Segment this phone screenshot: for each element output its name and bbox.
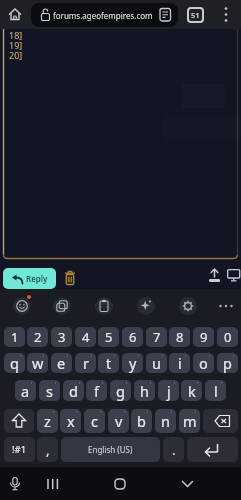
- staticText: j: [167, 381, 171, 401]
- button[interactable]: j: [158, 380, 179, 401]
- staticText: k: [188, 381, 196, 401]
- button[interactable]: 3: [51, 327, 72, 347]
- button[interactable]: 6: [122, 327, 143, 347]
- staticText: ': [185, 354, 187, 361]
- button[interactable]: q: [4, 353, 25, 373]
- staticText: r: [83, 353, 89, 373]
- button[interactable]: [13, 297, 31, 315]
- button[interactable]: 2: [27, 327, 48, 347]
- button[interactable]: 8: [169, 327, 190, 347]
- button[interactable]: [203, 409, 238, 433]
- button[interactable]: 7: [146, 327, 167, 347]
- button[interactable]: s: [39, 380, 60, 401]
- staticText: 5: [105, 328, 113, 346]
- button[interactable]: [187, 437, 238, 462]
- staticText: 1: [11, 328, 19, 346]
- button[interactable]: z: [37, 409, 58, 433]
- staticText: ': [102, 381, 104, 388]
- button[interactable]: h: [134, 380, 155, 401]
- staticText: e: [57, 353, 66, 373]
- button[interactable]: x: [60, 409, 81, 433]
- button[interactable]: p: [217, 353, 238, 373]
- button[interactable]: [7, 6, 23, 22]
- button[interactable]: w: [27, 353, 48, 373]
- staticText: ': [171, 410, 173, 417]
- staticText: 19]: [9, 39, 23, 51]
- button[interactable]: [95, 297, 113, 315]
- staticText: v: [115, 411, 123, 431]
- staticText: ': [124, 410, 126, 417]
- staticText: b: [137, 411, 146, 431]
- staticText: n: [161, 411, 170, 431]
- staticText: ': [162, 354, 164, 361]
- button[interactable]: 9: [193, 327, 214, 347]
- button[interactable]: u: [146, 353, 167, 373]
- button[interactable]: ,: [37, 437, 58, 462]
- button[interactable]: [219, 5, 233, 24]
- button[interactable]: g: [110, 380, 131, 401]
- button[interactable]: [227, 269, 241, 283]
- staticText: ': [147, 410, 149, 417]
- button[interactable]: English (US): [61, 437, 160, 462]
- button[interactable]: f: [86, 380, 107, 401]
- button[interactable]: m: [179, 409, 200, 433]
- staticText: ': [79, 381, 81, 388]
- staticText: 7: [153, 328, 161, 346]
- staticText: ': [209, 354, 211, 361]
- button[interactable]: [179, 476, 196, 493]
- button[interactable]: d: [63, 380, 84, 401]
- button[interactable]: t: [98, 353, 119, 373]
- staticText: s: [46, 381, 53, 401]
- button[interactable]: .: [163, 437, 184, 462]
- button[interactable]: 5: [98, 327, 119, 347]
- staticText: ': [20, 354, 22, 361]
- button[interactable]: e: [51, 353, 72, 373]
- button[interactable]: !#1: [4, 437, 35, 462]
- staticText: z: [44, 411, 51, 431]
- button[interactable]: forums.ageofempires.com: [31, 3, 178, 27]
- staticText: ': [195, 410, 197, 417]
- staticText: 4: [82, 328, 90, 346]
- button[interactable]: 51: [187, 7, 204, 23]
- staticText: ': [76, 410, 78, 417]
- staticText: ': [174, 381, 176, 388]
- button[interactable]: l: [205, 380, 226, 401]
- button[interactable]: v: [108, 409, 129, 433]
- button[interactable]: y: [122, 353, 143, 373]
- button[interactable]: [62, 270, 78, 287]
- button[interactable]: 1: [4, 327, 25, 347]
- staticText: c: [91, 411, 98, 431]
- button[interactable]: n: [155, 409, 176, 433]
- button[interactable]: Reply: [3, 268, 56, 289]
- button[interactable]: [206, 268, 223, 284]
- button[interactable]: [137, 297, 155, 315]
- button[interactable]: [217, 298, 235, 314]
- button[interactable]: r: [75, 353, 96, 373]
- button[interactable]: [53, 297, 71, 315]
- button[interactable]: 0: [217, 327, 238, 347]
- button[interactable]: [45, 476, 61, 492]
- staticText: ': [100, 410, 102, 417]
- button[interactable]: [7, 476, 23, 492]
- staticText: 0: [224, 328, 232, 346]
- button[interactable]: a: [15, 380, 36, 401]
- button[interactable]: [112, 476, 128, 492]
- staticText: ': [91, 354, 93, 361]
- button[interactable]: b: [131, 409, 152, 433]
- staticText: ': [55, 381, 57, 388]
- button[interactable]: [4, 409, 34, 433]
- staticText: a: [21, 381, 30, 401]
- staticText: 9: [200, 328, 208, 346]
- staticText: p: [223, 353, 232, 373]
- staticText: ': [43, 354, 45, 361]
- button[interactable]: 4: [75, 327, 96, 347]
- button[interactable]: i: [169, 353, 190, 373]
- staticText: 18]: [9, 29, 23, 41]
- button[interactable]: c: [84, 409, 105, 433]
- staticText: x: [67, 411, 75, 431]
- button[interactable]: k: [181, 380, 202, 401]
- button[interactable]: [179, 297, 197, 315]
- staticText: w: [32, 353, 44, 373]
- staticText: ': [138, 354, 140, 361]
- button[interactable]: o: [193, 353, 214, 373]
